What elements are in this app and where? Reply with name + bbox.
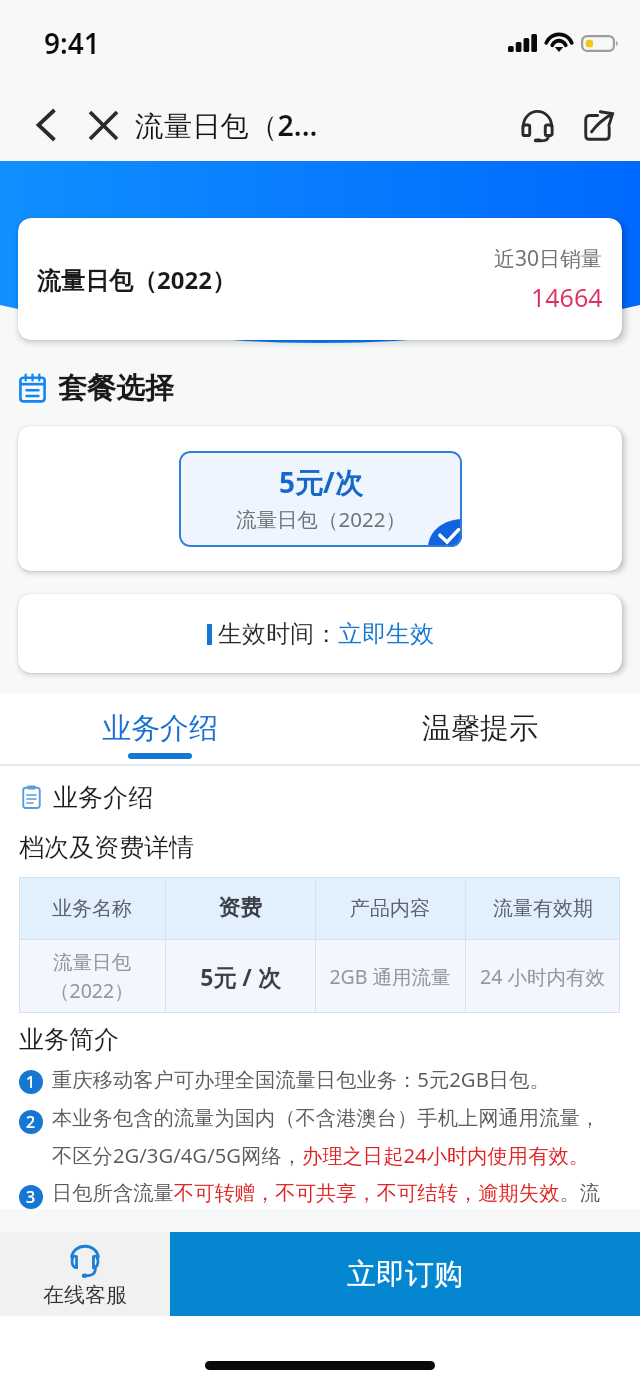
button[interactable]: Share xyxy=(568,94,630,156)
staticText: 流量有效期 xyxy=(493,896,593,921)
staticText: 在线客服 xyxy=(43,1282,127,1308)
staticText: 本业务包含的流量为国内（不含港澳台）手机上网通用流量，不区分2G/3G/4G/5… xyxy=(52,1105,620,1169)
button[interactable]: 立即订购 xyxy=(170,1232,640,1316)
staticText: 近30日销量 xyxy=(494,244,603,273)
button[interactable]: 流量日包（2022） xyxy=(18,218,622,340)
staticText: 2GB 通用流量 xyxy=(329,963,451,990)
staticText: 温馨提示 xyxy=(422,710,538,747)
staticText: 立即生效 xyxy=(338,619,434,649)
staticText: 流量日包 xyxy=(53,950,131,975)
button[interactable]: Back xyxy=(18,94,74,156)
staticText: 生效时间： xyxy=(218,619,338,649)
staticText: 9:41 xyxy=(44,24,100,62)
staticText: 业务简介 xyxy=(19,1024,119,1055)
staticText: 立即订购 xyxy=(347,1256,463,1293)
staticText: 3 xyxy=(26,1186,36,1208)
button[interactable]: 生效时间： xyxy=(18,594,622,673)
staticText: 业务名称 xyxy=(52,896,132,921)
staticText: 2 xyxy=(26,1111,36,1133)
staticText: 资费 xyxy=(218,894,262,922)
staticText: 档次及资费详情 xyxy=(19,832,194,863)
staticText: 1 xyxy=(26,1071,36,1093)
staticText: 产品内容 xyxy=(350,896,430,921)
staticText: 5元/次 xyxy=(279,463,363,501)
staticText: 流量日包（2022） xyxy=(37,263,236,296)
staticText: 流量日包（2022） xyxy=(236,505,406,533)
staticText: 业务介绍 xyxy=(102,710,218,747)
button[interactable]: 5元/次 xyxy=(179,451,462,547)
staticText: 24 小时内有效 xyxy=(480,963,605,990)
staticText: 重庆移动客户可办理全国流量日包业务：5元2GB日包。 xyxy=(52,1065,550,1093)
button[interactable]: Close xyxy=(74,94,132,156)
staticText: 14664 xyxy=(531,280,603,314)
staticText: 流量日包（2... xyxy=(135,106,318,145)
button[interactable]: Customer service xyxy=(506,94,568,156)
staticText: 5元 / 次 xyxy=(200,961,281,992)
staticText: 日包所含流量不可转赠，不可共享，不可结转，逾期失效。流 xyxy=(52,1180,601,1206)
staticText: （2022） xyxy=(50,977,134,1004)
staticText: 套餐选择 xyxy=(58,370,174,407)
button[interactable]: 温馨提示 xyxy=(320,693,640,766)
button[interactable]: 业务介绍 xyxy=(0,693,320,766)
staticText: 业务介绍 xyxy=(53,782,153,813)
button[interactable]: 在线客服 xyxy=(0,1232,170,1316)
